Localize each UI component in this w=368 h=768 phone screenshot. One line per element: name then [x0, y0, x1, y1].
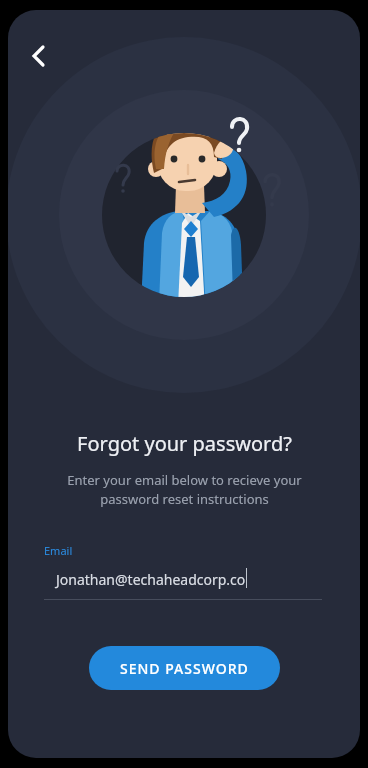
staticText: Enter your email below to recieve your p… — [67, 471, 302, 508]
button[interactable]: Back — [14, 32, 62, 80]
button[interactable]: SEND PASSWORD — [89, 646, 280, 690]
staticText: Forgot your password? — [77, 430, 292, 457]
staticText: SEND PASSWORD — [120, 659, 249, 678]
staticText: Email — [44, 543, 73, 558]
staticText: Jonathan@techaheadcorp.co — [56, 570, 246, 589]
button[interactable]: Email — [44, 543, 322, 600]
